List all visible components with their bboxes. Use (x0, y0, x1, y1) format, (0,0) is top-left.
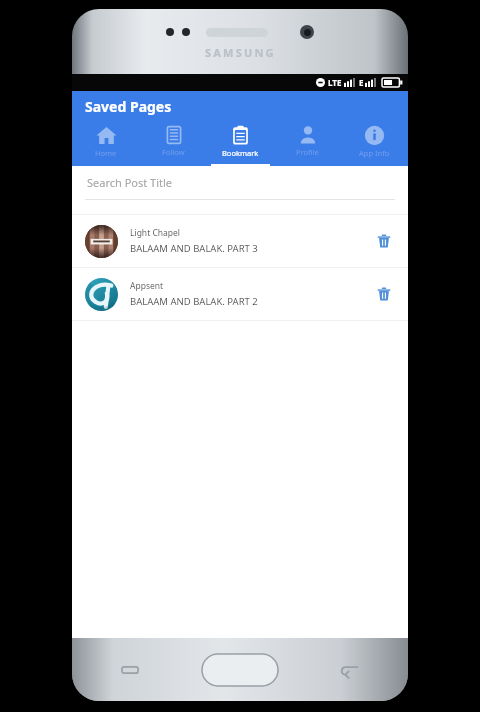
staticText: LTE (328, 77, 342, 88)
button[interactable]: Delete saved page (368, 278, 400, 310)
staticText: BALAAM AND BALAK. PART 3 (130, 242, 258, 255)
staticText: Saved Pages (85, 97, 172, 116)
staticText: BALAAM AND BALAK. PART 2 (130, 295, 258, 308)
staticText: App Info (359, 148, 390, 158)
button[interactable]: App Info (341, 121, 408, 166)
staticText: Bookmark (222, 148, 259, 158)
button[interactable]: Follow (140, 121, 207, 166)
staticText: SAMSUNG (205, 45, 276, 60)
staticText: E (359, 77, 364, 88)
staticText: Appsent (130, 280, 164, 292)
button[interactable]: Light Chapel (72, 215, 408, 267)
staticText: Light Chapel (130, 227, 181, 239)
staticText: Follow (162, 147, 185, 157)
staticText: Search Post Title (87, 175, 173, 190)
button[interactable]: Home (72, 121, 140, 166)
staticText: Profile (296, 147, 319, 157)
button[interactable]: Appsent (72, 268, 408, 320)
button[interactable]: Profile (274, 121, 341, 166)
button[interactable]: Search Post Title (72, 166, 408, 199)
button[interactable]: Delete saved page (368, 225, 400, 257)
button[interactable]: Bookmark (207, 121, 274, 166)
staticText: Home (95, 148, 117, 158)
